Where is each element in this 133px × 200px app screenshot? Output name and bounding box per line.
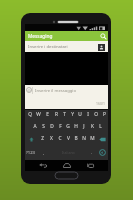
staticText: L (99, 123, 102, 130)
staticText: Z (41, 135, 44, 142)
button[interactable]: Recents (84, 160, 96, 171)
staticText: , (43, 150, 45, 156)
button[interactable]: Shift (25, 134, 38, 147)
button[interactable]: Enter (96, 147, 108, 160)
staticText: S (42, 123, 45, 130)
staticText: N (82, 135, 86, 142)
button[interactable]: R (52, 110, 60, 122)
staticText: E (46, 111, 49, 118)
staticText: Y (71, 111, 74, 118)
staticText: W (36, 111, 41, 118)
button[interactable]: , (40, 147, 48, 160)
button[interactable]: O (92, 110, 100, 122)
staticText: C (58, 135, 62, 142)
staticText: F (59, 123, 62, 130)
staticText: A (33, 123, 37, 130)
staticText: X (50, 135, 53, 142)
button[interactable]: X (47, 134, 56, 147)
button[interactable]: Add contact (98, 44, 105, 51)
staticText: V (67, 135, 70, 142)
staticText: O (94, 111, 98, 118)
staticText: Q (28, 111, 32, 118)
staticText: . (91, 150, 93, 156)
button[interactable]: D (48, 122, 56, 134)
button[interactable]: K (88, 122, 96, 134)
button[interactable]: V (64, 134, 72, 147)
button[interactable]: E (43, 110, 52, 122)
staticText: Messaging (28, 33, 98, 40)
button[interactable]: Back (37, 160, 49, 171)
button[interactable]: Y (68, 110, 76, 122)
staticText: J (83, 123, 85, 130)
staticText: Italiano (62, 150, 75, 155)
staticText: T (63, 111, 66, 118)
button[interactable]: I (84, 110, 92, 122)
button[interactable]: A (30, 122, 39, 134)
staticText: Inserire i destinatari (28, 44, 98, 50)
button[interactable]: U (76, 110, 84, 122)
staticText: P (103, 111, 106, 118)
button[interactable]: Inserire i destinatari (25, 41, 108, 52)
button[interactable]: Search (98, 31, 108, 41)
staticText: 160/1 (96, 101, 106, 106)
button[interactable]: Backspace (96, 134, 108, 147)
staticText: K (91, 123, 94, 130)
button[interactable]: J (80, 122, 88, 134)
button[interactable]: S (39, 122, 48, 134)
button[interactable]: B (72, 134, 80, 147)
button[interactable]: . (88, 147, 96, 160)
staticText: D (50, 123, 54, 130)
button[interactable]: L (96, 122, 104, 134)
button[interactable]: Q (25, 110, 34, 122)
button[interactable]: P (100, 110, 108, 122)
button[interactable]: C (56, 134, 64, 147)
staticText: B (74, 135, 78, 142)
staticText: I (87, 111, 89, 118)
staticText: H (74, 123, 78, 130)
button[interactable]: F (56, 122, 64, 134)
button[interactable]: Z (38, 134, 47, 147)
button[interactable]: M (88, 134, 96, 147)
button[interactable]: W (34, 110, 43, 122)
button[interactable]: N (80, 134, 88, 147)
button[interactable]: G (64, 122, 72, 134)
button[interactable]: ?123 (25, 147, 40, 160)
button[interactable]: Emoji (26, 87, 32, 93)
button[interactable]: H (72, 122, 80, 134)
staticText: R (55, 111, 58, 118)
button[interactable]: Home (61, 160, 73, 171)
staticText: M (90, 135, 95, 142)
staticText: ?123 (26, 150, 36, 156)
button[interactable]: T (60, 110, 68, 122)
staticText: Inserire il messaggio (35, 88, 76, 94)
staticText: U (78, 111, 82, 118)
staticText: G (66, 123, 70, 130)
